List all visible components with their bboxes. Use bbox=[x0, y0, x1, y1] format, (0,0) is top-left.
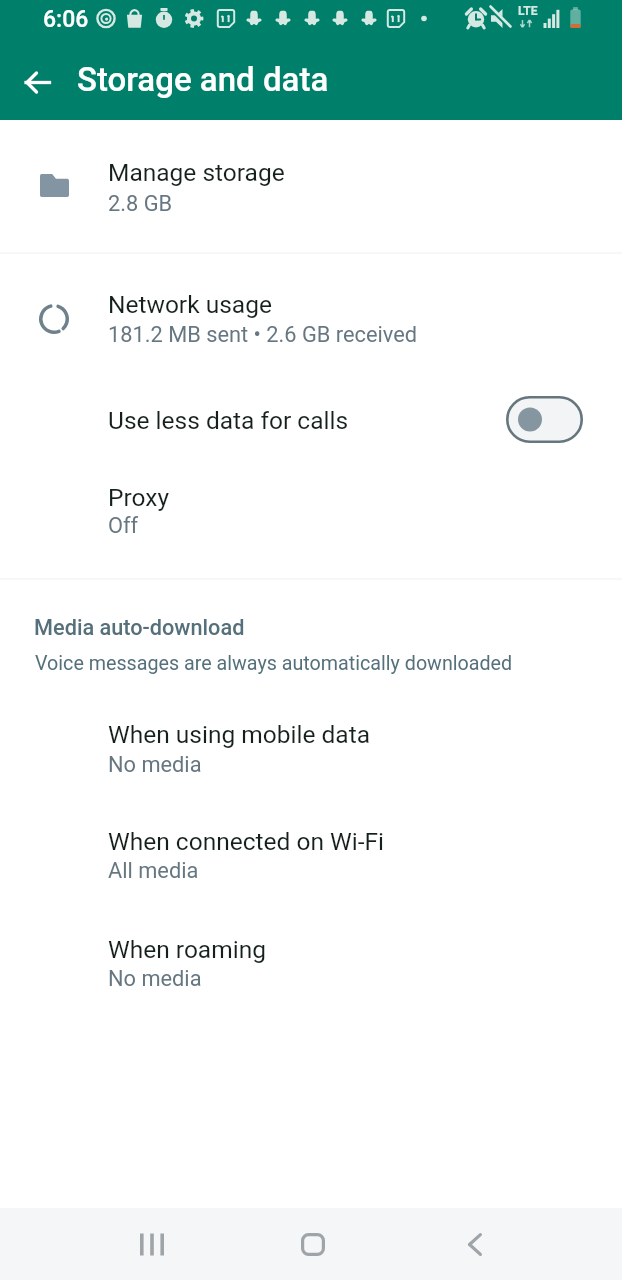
staticText: Manage storage bbox=[108, 158, 285, 187]
staticText: All media bbox=[108, 858, 199, 884]
button[interactable]: Manage storage bbox=[0, 120, 622, 253]
button[interactable]: Back bbox=[429, 1208, 521, 1280]
button[interactable]: Use less data for calls toggle bbox=[480, 366, 608, 473]
staticText: Storage and data bbox=[77, 60, 329, 99]
button[interactable]: When connected on Wi-Fi bbox=[0, 807, 622, 914]
button[interactable]: When using mobile data bbox=[0, 700, 622, 807]
staticText: When roaming bbox=[108, 935, 266, 964]
staticText: Proxy bbox=[108, 483, 169, 512]
button[interactable]: Back bbox=[8, 45, 66, 120]
button[interactable]: Home bbox=[267, 1208, 359, 1280]
staticText: When using mobile data bbox=[108, 720, 370, 749]
staticText: LTE bbox=[518, 4, 538, 18]
staticText: Off bbox=[108, 513, 139, 539]
button[interactable]: Recent apps bbox=[106, 1208, 198, 1280]
staticText: 6:06 bbox=[43, 6, 89, 33]
button[interactable]: Use less data for calls bbox=[0, 374, 622, 481]
staticText: No media bbox=[108, 752, 202, 778]
button[interactable]: Network usage bbox=[0, 254, 622, 374]
staticText: Media auto-download bbox=[34, 615, 245, 640]
staticText: When connected on Wi-Fi bbox=[108, 827, 384, 856]
staticText: 181.2 MB sent • 2.6 GB received bbox=[108, 322, 418, 348]
staticText: Voice messages are always automatically … bbox=[35, 652, 513, 675]
button[interactable]: Proxy bbox=[0, 481, 622, 578]
staticText: Use less data for calls bbox=[108, 406, 349, 435]
staticText: No media bbox=[108, 966, 202, 992]
button[interactable]: When roaming bbox=[0, 914, 622, 1024]
staticText: 2.8 GB bbox=[108, 191, 173, 217]
staticText: Network usage bbox=[108, 290, 272, 319]
